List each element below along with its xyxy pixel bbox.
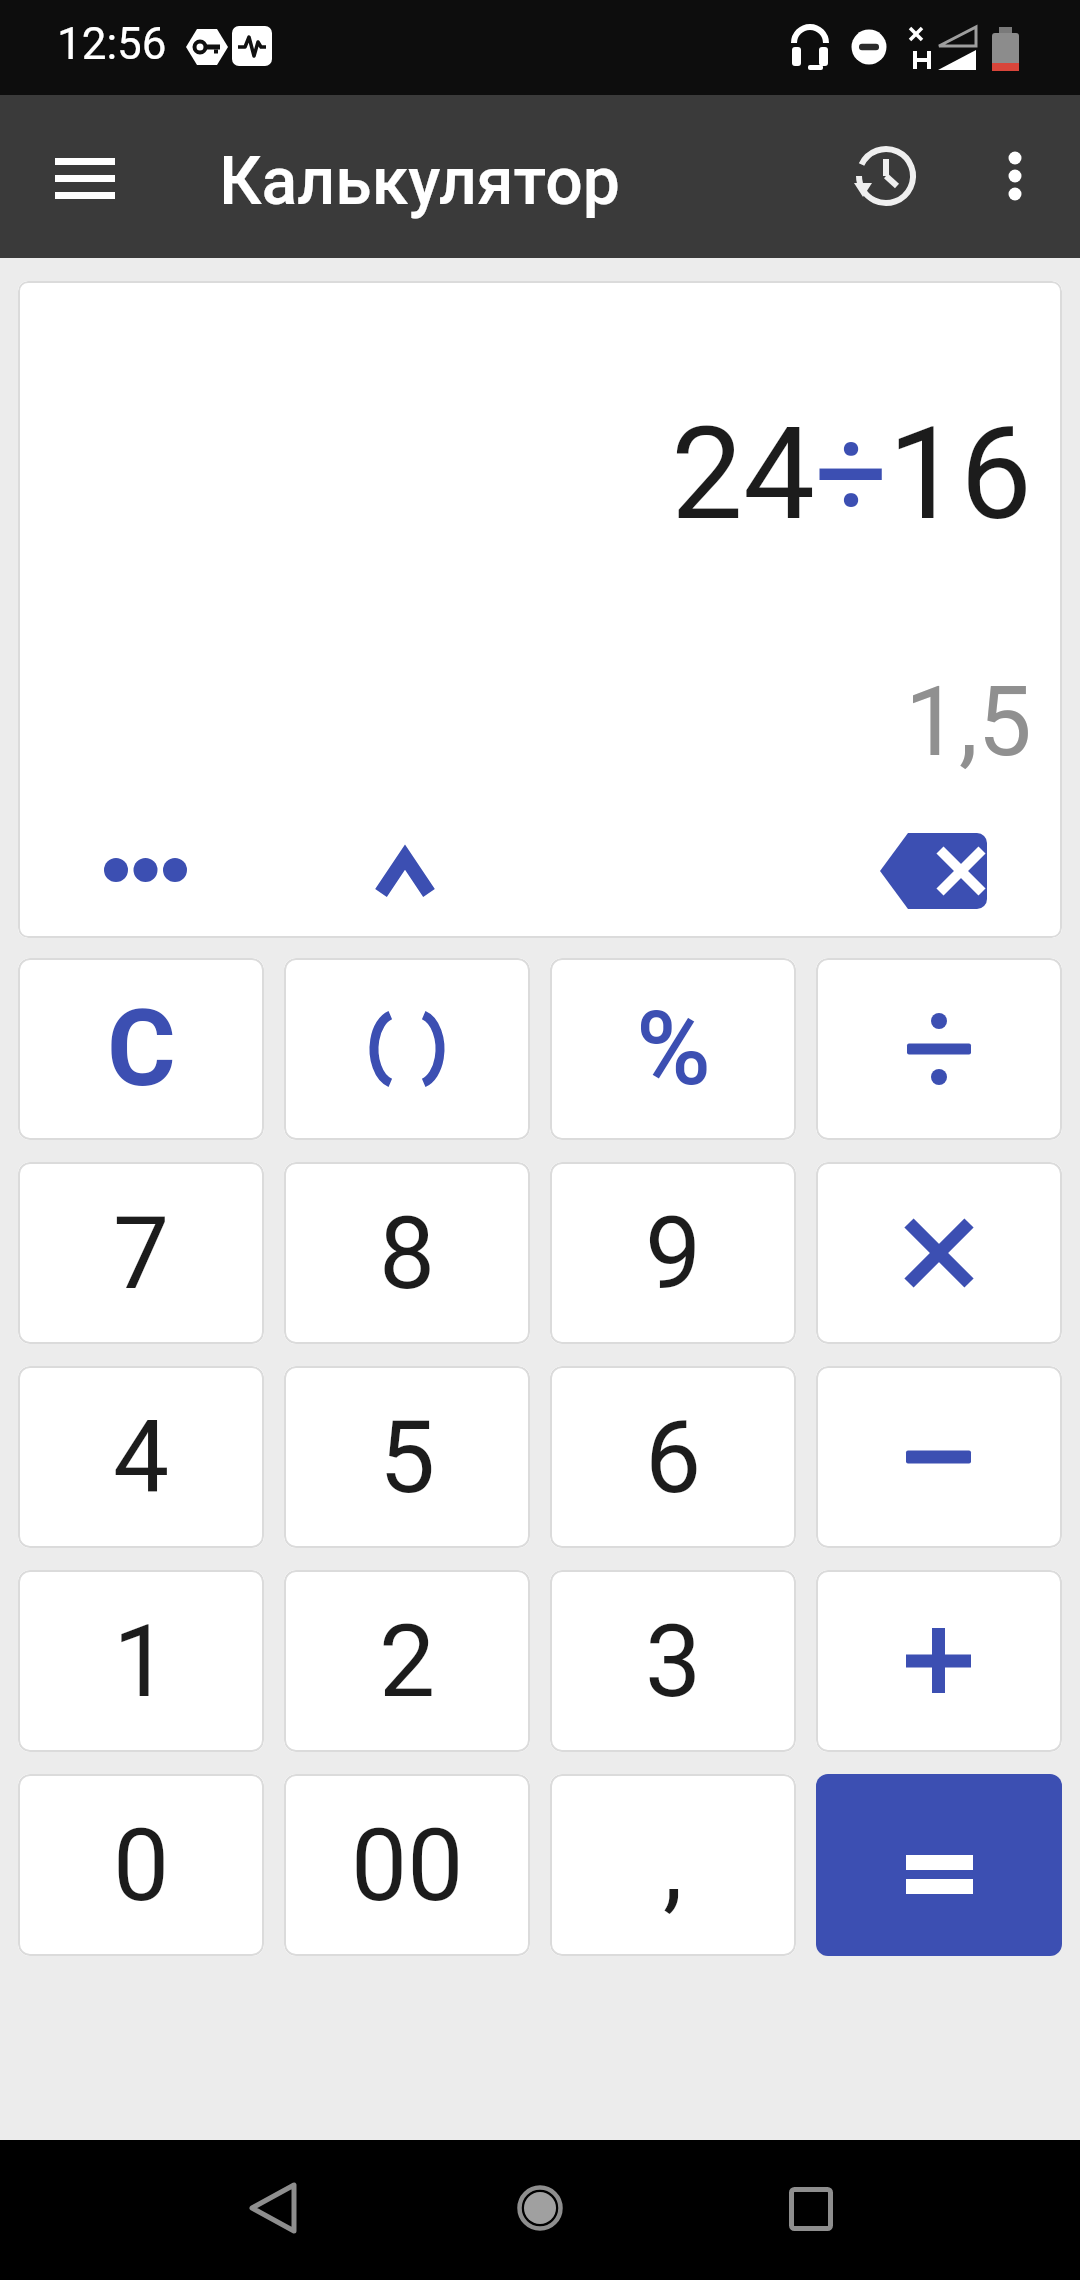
button[interactable]	[761, 2178, 861, 2254]
staticText: C	[107, 988, 176, 1111]
button[interactable]	[222, 2165, 322, 2255]
button[interactable]: C	[18, 958, 264, 1140]
button[interactable]: 4	[18, 1366, 264, 1548]
button[interactable]	[816, 958, 1062, 1140]
button[interactable]	[284, 958, 530, 1140]
button[interactable]: 5	[284, 1366, 530, 1548]
staticText: 4	[113, 1399, 170, 1516]
button[interactable]	[816, 1570, 1062, 1752]
button[interactable]: 8	[284, 1162, 530, 1344]
button[interactable]: ,	[550, 1774, 796, 1956]
button[interactable]	[816, 1366, 1062, 1548]
button[interactable]: 00	[284, 1774, 530, 1956]
staticText: ,	[663, 1807, 683, 1924]
button[interactable]	[846, 136, 926, 216]
button[interactable]	[983, 136, 1047, 216]
button[interactable]: 3	[550, 1570, 796, 1752]
button[interactable]: 1	[18, 1570, 264, 1752]
button[interactable]	[40, 143, 130, 213]
staticText: 1,5	[905, 666, 1032, 779]
staticText: 24÷16	[671, 399, 1032, 549]
staticText: 9	[645, 1195, 702, 1312]
staticText: 5	[379, 1399, 436, 1516]
button[interactable]: 0	[18, 1774, 264, 1956]
staticText: 8	[379, 1195, 436, 1312]
staticText: 12:56	[57, 18, 167, 70]
button[interactable]	[345, 819, 465, 923]
staticText: 0	[113, 1807, 170, 1924]
button[interactable]	[816, 1774, 1062, 1956]
staticText: 6	[645, 1399, 702, 1516]
button[interactable]: 6	[550, 1366, 796, 1548]
staticText: 7	[113, 1195, 170, 1312]
button[interactable]: 2	[284, 1570, 530, 1752]
button[interactable]	[495, 2163, 585, 2253]
button[interactable]	[860, 811, 1008, 931]
button[interactable]: 7	[18, 1162, 264, 1344]
button[interactable]: 9	[550, 1162, 796, 1344]
staticText: 3	[645, 1603, 702, 1720]
staticText: %	[636, 989, 711, 1109]
staticText: Калькулятор	[219, 143, 621, 220]
staticText: 00	[351, 1807, 464, 1924]
staticText: 2	[379, 1603, 436, 1720]
button[interactable]: %	[550, 958, 796, 1140]
button[interactable]	[74, 828, 218, 912]
button[interactable]	[816, 1162, 1062, 1344]
staticText: 1	[113, 1603, 170, 1720]
